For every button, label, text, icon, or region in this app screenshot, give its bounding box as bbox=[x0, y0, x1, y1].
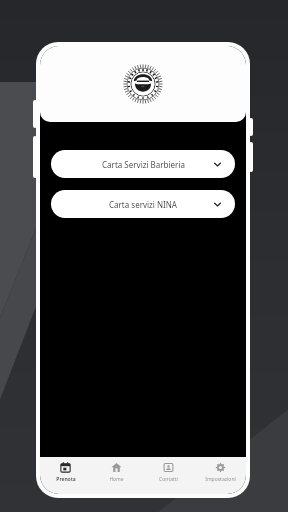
button[interactable]: Contatti bbox=[142, 457, 194, 494]
staticText: Contatti bbox=[159, 476, 178, 483]
button[interactable]: Impostazioni bbox=[194, 457, 246, 494]
staticText: Impostazioni bbox=[205, 476, 236, 483]
staticText: Carta Servizi Barbieria bbox=[102, 159, 185, 170]
button[interactable]: Home bbox=[91, 457, 142, 494]
staticText: Home bbox=[109, 476, 124, 483]
staticText: Prenota bbox=[56, 476, 76, 483]
button[interactable]: Prenota bbox=[40, 457, 91, 494]
button[interactable]: Carta servizi NINA bbox=[51, 190, 235, 218]
staticText: Carta servizi NINA bbox=[109, 199, 177, 210]
button[interactable]: Carta Servizi Barbieria bbox=[51, 150, 235, 178]
